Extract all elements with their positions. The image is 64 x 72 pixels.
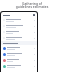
button[interactable] <box>1 57 37 63</box>
button[interactable]: More options <box>33 14 35 16</box>
button[interactable] <box>1 63 37 69</box>
button[interactable] <box>1 29 37 35</box>
button[interactable] <box>1 45 37 51</box>
button[interactable] <box>1 51 37 57</box>
button[interactable] <box>1 23 37 29</box>
button[interactable] <box>1 35 37 41</box>
button[interactable] <box>1 17 37 23</box>
staticText: Gathering of guidelines estimates <box>0 1 64 9</box>
